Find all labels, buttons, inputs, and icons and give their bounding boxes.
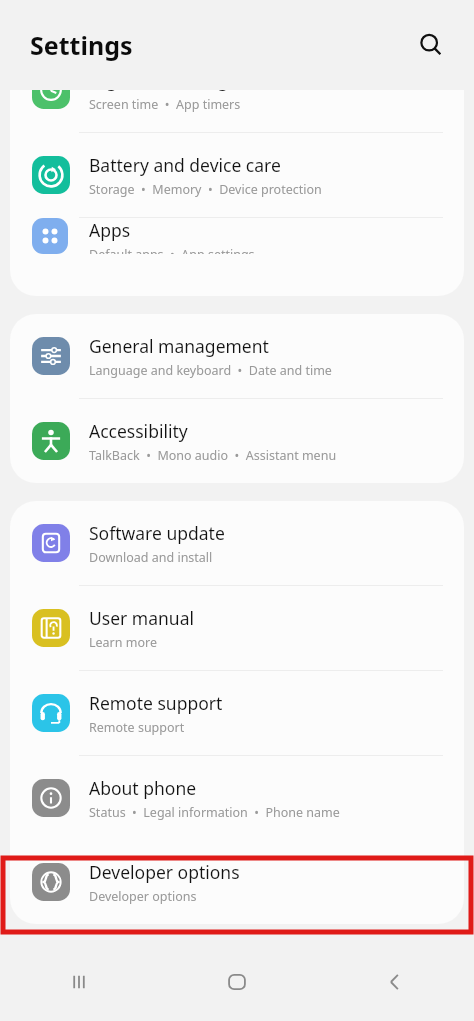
staticText: Storage • Memory • Device protection <box>89 181 322 198</box>
staticText: Battery and device care <box>89 153 281 177</box>
button[interactable]: Search <box>409 23 453 67</box>
staticText: Remote support <box>89 691 223 715</box>
staticText: Software update <box>89 521 225 545</box>
button[interactable]: Recent apps <box>0 943 158 1021</box>
staticText: About phone <box>89 776 197 800</box>
button[interactable]: Digital Wellbeing <box>10 90 464 132</box>
staticText: Accessibility <box>89 419 188 443</box>
button[interactable]: Remote support <box>10 671 464 755</box>
staticText: Language and keyboard • Date and time <box>89 362 332 379</box>
staticText: TalkBack • Mono audio • Assistant menu <box>89 447 337 464</box>
button[interactable]: Back <box>316 943 474 1021</box>
button[interactable]: Battery and device care <box>10 133 464 217</box>
button[interactable]: About phone <box>10 756 464 840</box>
staticText: Remote support <box>89 719 185 736</box>
staticText: Learn more <box>89 634 157 651</box>
staticText: User manual <box>89 606 194 630</box>
staticText: Default apps • App settings <box>89 246 255 254</box>
button[interactable]: Software update <box>10 501 464 585</box>
button[interactable]: Apps <box>10 218 464 254</box>
button[interactable]: User manual <box>10 586 464 670</box>
staticText: Settings <box>30 28 133 62</box>
staticText: Screen time • App timers <box>89 96 241 113</box>
staticText: Digital Wellbeing <box>89 90 229 92</box>
button[interactable]: Developer options <box>10 840 464 924</box>
button[interactable]: General management <box>10 314 464 398</box>
staticText: Download and install <box>89 549 213 566</box>
staticText: Apps <box>89 218 131 242</box>
staticText: Developer options <box>89 860 240 884</box>
button[interactable]: Accessibility <box>10 399 464 483</box>
staticText: General management <box>89 334 269 358</box>
staticText: Developer options <box>89 888 197 905</box>
staticText: Status • Legal information • Phone name <box>89 804 340 821</box>
button[interactable]: Home <box>158 943 316 1021</box>
